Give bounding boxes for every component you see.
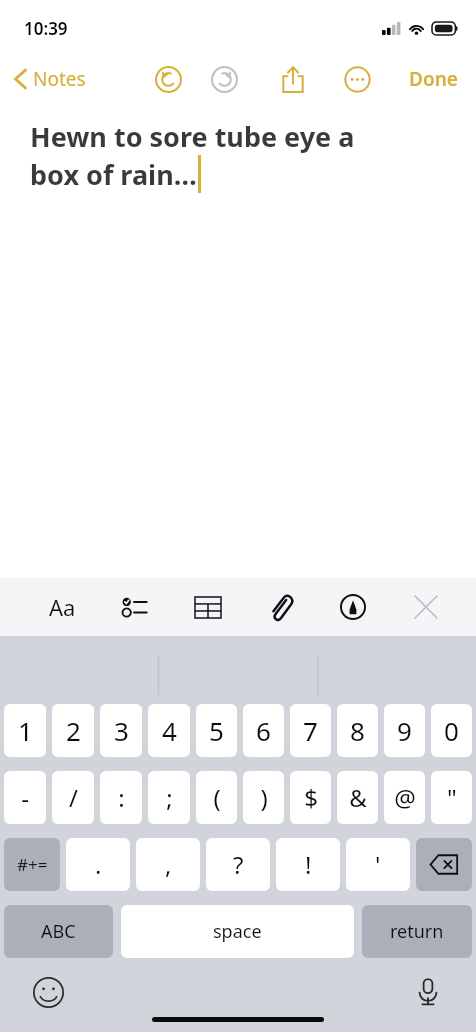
button[interactable]: 1 bbox=[4, 704, 46, 757]
staticText: Hewn to sore tube eye a bbox=[30, 118, 355, 155]
button[interactable]: 6 bbox=[243, 704, 284, 757]
staticText: 3 bbox=[114, 713, 129, 748]
button[interactable]: : bbox=[100, 771, 142, 824]
staticText: , bbox=[165, 848, 172, 881]
button[interactable]: - bbox=[4, 771, 46, 824]
button[interactable]: 7 bbox=[290, 704, 331, 757]
staticText: ) bbox=[260, 781, 268, 814]
staticText: #+= bbox=[17, 853, 48, 876]
button[interactable]: & bbox=[337, 771, 378, 824]
button[interactable]: Markup bbox=[331, 585, 375, 629]
button[interactable]: Redo bbox=[204, 59, 244, 99]
staticText: 2 bbox=[66, 713, 81, 748]
button[interactable]: 4 bbox=[148, 704, 190, 757]
button[interactable]: 3 bbox=[100, 704, 142, 757]
staticText: 7 bbox=[303, 713, 318, 748]
staticText: 10:39 bbox=[24, 17, 68, 40]
staticText: ? bbox=[233, 848, 244, 881]
button[interactable]: return bbox=[362, 905, 472, 958]
button[interactable]: . bbox=[66, 838, 130, 891]
staticText: ! bbox=[305, 848, 312, 881]
button[interactable]: space bbox=[121, 905, 354, 958]
button[interactable]: 5 bbox=[196, 704, 237, 757]
staticText: box of rain… bbox=[30, 156, 197, 193]
staticText: $ bbox=[304, 781, 318, 814]
staticText: Aa bbox=[49, 592, 76, 622]
staticText: return bbox=[390, 919, 444, 944]
staticText: . bbox=[95, 848, 102, 881]
button[interactable]: ? bbox=[206, 838, 270, 891]
button[interactable]: ! bbox=[276, 838, 340, 891]
button[interactable]: More options bbox=[337, 59, 377, 99]
staticText: - bbox=[21, 781, 29, 814]
button[interactable]: ) bbox=[243, 771, 284, 824]
staticText: ; bbox=[166, 781, 173, 814]
staticText: / bbox=[69, 781, 78, 814]
button[interactable]: / bbox=[52, 771, 94, 824]
button[interactable]: Close keyboard bbox=[404, 585, 448, 629]
staticText: & bbox=[349, 781, 367, 814]
staticText: 5 bbox=[209, 713, 224, 748]
staticText: ( bbox=[213, 781, 221, 814]
button[interactable]: Undo bbox=[148, 59, 188, 99]
button[interactable]: ABC bbox=[4, 905, 113, 958]
button[interactable]: 0 bbox=[431, 704, 472, 757]
staticText: 0 bbox=[444, 713, 459, 748]
button[interactable]: " bbox=[431, 771, 472, 824]
button[interactable]: Share bbox=[273, 59, 313, 99]
button[interactable]: ( bbox=[196, 771, 237, 824]
button[interactable]: Dictate bbox=[406, 970, 450, 1014]
button[interactable]: Table bbox=[186, 585, 230, 629]
button[interactable]: Emoji bbox=[26, 970, 70, 1014]
staticText: 1 bbox=[18, 713, 33, 748]
staticText: Notes bbox=[33, 66, 86, 92]
staticText: 8 bbox=[350, 713, 365, 748]
button[interactable]: Aa bbox=[40, 585, 84, 629]
button[interactable]: Notes bbox=[10, 60, 90, 98]
staticText: Done bbox=[409, 66, 458, 92]
staticText: 9 bbox=[397, 713, 412, 748]
staticText: space bbox=[213, 919, 262, 944]
button[interactable]: 8 bbox=[337, 704, 378, 757]
button[interactable]: Delete bbox=[416, 838, 472, 891]
button[interactable]: , bbox=[136, 838, 200, 891]
button[interactable]: ' bbox=[346, 838, 410, 891]
button[interactable]: Attach bbox=[258, 585, 302, 629]
staticText: ABC bbox=[41, 919, 76, 944]
button[interactable]: #+= bbox=[4, 838, 60, 891]
button[interactable]: Done bbox=[403, 60, 464, 98]
staticText: 6 bbox=[256, 713, 271, 748]
button[interactable]: Checklist bbox=[113, 585, 157, 629]
staticText: " bbox=[447, 781, 457, 814]
staticText: @ bbox=[394, 781, 416, 814]
button[interactable]: ; bbox=[148, 771, 190, 824]
staticText: ' bbox=[375, 848, 381, 881]
button[interactable]: 9 bbox=[384, 704, 425, 757]
button[interactable]: @ bbox=[384, 771, 425, 824]
button[interactable]: 2 bbox=[52, 704, 94, 757]
staticText: : bbox=[118, 781, 125, 814]
button[interactable]: $ bbox=[290, 771, 331, 824]
staticText: 4 bbox=[162, 713, 177, 748]
